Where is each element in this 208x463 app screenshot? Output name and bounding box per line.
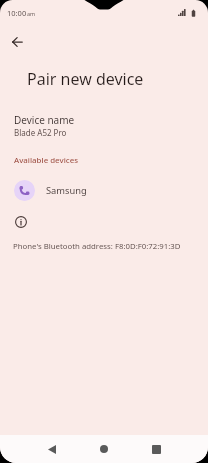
staticText: Phone's Bluetooth address: F8:0D:F0:72:9… (13, 241, 181, 252)
staticText: Samsung (46, 184, 87, 197)
staticText: Pair new device (27, 68, 144, 90)
button[interactable]: Recent apps (142, 435, 170, 463)
button[interactable]: Information (8, 209, 34, 235)
staticText: Available devices (14, 155, 79, 166)
button[interactable]: Samsung (0, 176, 208, 204)
button[interactable]: Home (90, 435, 118, 463)
button[interactable]: Device name (0, 104, 208, 147)
staticText: Blade A52 Pro (14, 127, 67, 138)
button[interactable]: Back (38, 435, 66, 463)
staticText: am (27, 10, 36, 17)
staticText: 10:00 (7, 8, 27, 18)
button[interactable]: Navigate up (5, 30, 29, 54)
staticText: Device name (14, 113, 75, 127)
